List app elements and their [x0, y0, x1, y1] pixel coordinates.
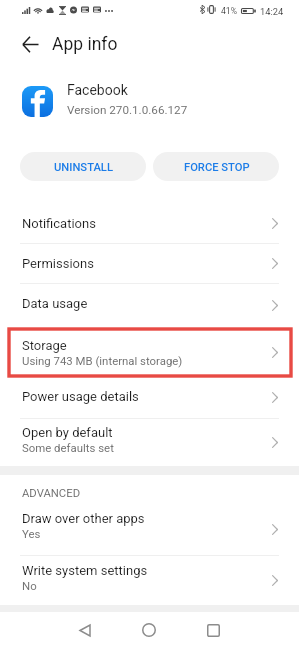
button[interactable]: UNINSTALL — [20, 152, 146, 181]
button[interactable]: Storage — [0, 328, 299, 377]
button[interactable]: Notifications — [0, 203, 299, 243]
button[interactable]: Power usage details — [0, 377, 299, 418]
staticText: Storage — [22, 338, 67, 353]
button[interactable]: Open by default — [0, 418, 299, 466]
staticText: FORCE STOP — [184, 161, 250, 174]
staticText: Notifications — [22, 216, 96, 231]
staticText: Using 743 MB (internal storage) — [22, 354, 183, 367]
button[interactable]: Write system settings — [0, 555, 299, 605]
staticText: Draw over other apps — [22, 511, 145, 526]
staticText: UNINSTALL — [54, 161, 113, 174]
button[interactable]: Back — [14, 28, 46, 60]
staticText: Yes — [22, 527, 41, 540]
staticText: ADVANCED — [22, 487, 81, 500]
staticText: Version 270.1.0.66.127 — [67, 103, 188, 117]
staticText: App info — [52, 34, 118, 55]
button[interactable]: Home — [131, 612, 167, 648]
staticText: Permissions — [22, 256, 94, 271]
staticText: Write system settings — [22, 563, 148, 578]
staticText: 41% — [221, 6, 237, 16]
staticText: Facebook — [67, 82, 128, 98]
button[interactable]: Permissions — [0, 243, 299, 283]
staticText: 14:24 — [260, 6, 284, 17]
staticText: Power usage details — [22, 389, 139, 404]
staticText: Open by default — [22, 425, 113, 440]
staticText: Data usage — [22, 296, 88, 311]
button[interactable]: Back — [67, 612, 103, 648]
button[interactable]: Data usage — [0, 283, 299, 328]
staticText: No — [22, 579, 37, 592]
button[interactable]: FORCE STOP — [153, 152, 279, 181]
staticText: Some defaults set — [22, 441, 114, 454]
button[interactable]: Draw over other apps — [0, 504, 299, 555]
button[interactable]: Recents — [195, 612, 231, 648]
